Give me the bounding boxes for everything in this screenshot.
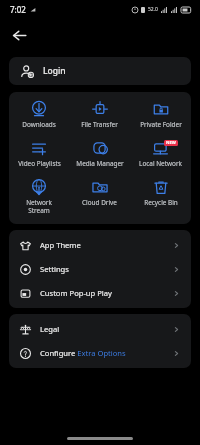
button[interactable]: Custom Pop-up Play bbox=[9, 281, 191, 305]
staticText: Login bbox=[43, 65, 66, 77]
staticText: 52.0 bbox=[148, 6, 158, 13]
staticText: Recycle Bin bbox=[144, 198, 178, 207]
button[interactable]: Cloud Drive bbox=[69, 177, 130, 209]
button[interactable]: Configure Extra Options bbox=[9, 341, 191, 365]
button[interactable]: Network Stream bbox=[9, 177, 69, 217]
button[interactable]: NEW bbox=[130, 138, 191, 170]
button[interactable]: Recycle Bin bbox=[130, 177, 191, 209]
button[interactable]: Back bbox=[7, 23, 31, 47]
button[interactable]: File Transfer bbox=[69, 99, 130, 131]
staticText: Cloud Drive bbox=[82, 198, 117, 207]
button[interactable]: Downloads bbox=[9, 99, 69, 131]
staticText: Network Stream bbox=[26, 198, 52, 215]
button[interactable]: Video Playlists bbox=[9, 138, 69, 170]
staticText: Settings bbox=[40, 264, 69, 274]
staticText: Private Folder bbox=[140, 120, 182, 129]
staticText: Downloads bbox=[22, 120, 56, 129]
staticText: Configure Extra Options bbox=[40, 348, 126, 358]
staticText: Legal bbox=[40, 324, 60, 334]
button[interactable]: Legal bbox=[9, 317, 191, 341]
button[interactable]: Login bbox=[9, 57, 191, 85]
staticText: Local Network bbox=[139, 159, 182, 168]
staticText: Video Playlists bbox=[18, 159, 61, 168]
button[interactable]: Private Folder bbox=[130, 99, 191, 131]
staticText: 7:02 bbox=[10, 4, 26, 15]
button[interactable]: Settings bbox=[9, 257, 191, 281]
staticText: Custom Pop-up Play bbox=[40, 288, 112, 298]
staticText: NEW bbox=[166, 140, 176, 146]
staticText: App Theme bbox=[40, 240, 81, 250]
button[interactable]: App Theme bbox=[9, 233, 191, 257]
staticText: File Transfer bbox=[81, 120, 118, 129]
button[interactable]: Media Manager bbox=[69, 138, 130, 170]
staticText: Media Manager bbox=[76, 159, 124, 168]
